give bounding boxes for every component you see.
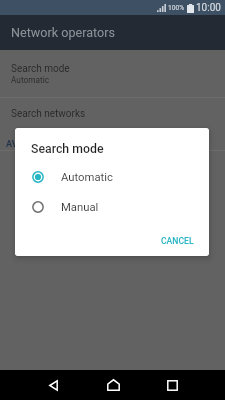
button[interactable]: Search mode [0, 63, 225, 85]
staticText: Manual [61, 201, 99, 214]
button[interactable]: Automatic [15, 162, 209, 192]
button[interactable]: Manual [15, 192, 209, 222]
staticText: Network operators [11, 25, 115, 40]
staticText: CANCEL [161, 236, 194, 246]
staticText: Search mode [11, 63, 70, 75]
staticText: 100% [168, 4, 185, 12]
staticText: AVAILABLE NETWORKS [6, 139, 104, 150]
staticText: Automatic [11, 75, 50, 85]
staticText: Automatic [61, 171, 113, 184]
button[interactable]: Back [36, 370, 70, 400]
button[interactable]: Home [96, 370, 130, 400]
staticText: Search mode [31, 142, 104, 156]
button[interactable]: CANCEL [148, 232, 209, 250]
staticText: 10:00 [196, 2, 221, 14]
staticText: Search networks [11, 108, 86, 120]
button[interactable]: Recent apps [155, 370, 189, 400]
button[interactable]: Search networks [0, 98, 225, 128]
